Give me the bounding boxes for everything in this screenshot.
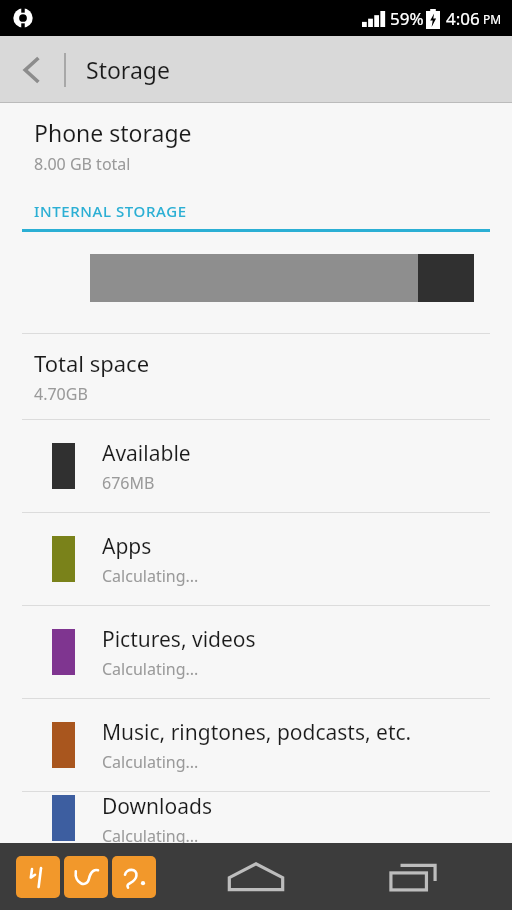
staticText: Storage [86, 54, 170, 85]
staticText: 4.70GB [34, 383, 88, 405]
button[interactable]: Language [112, 856, 156, 898]
button[interactable]: INTERNAL STORAGE [0, 201, 512, 221]
button[interactable]: Available [0, 420, 512, 512]
button[interactable]: Music, ringtones, podcasts, etc. [0, 699, 512, 791]
staticText: 8.00 GB total [34, 153, 131, 175]
button[interactable]: Keyboard layout [64, 856, 108, 898]
staticText: Downloads [102, 792, 212, 821]
staticText: Available [102, 439, 191, 468]
staticText: Music, ringtones, podcasts, etc. [102, 718, 412, 747]
staticText: 676MB [102, 472, 155, 494]
staticText: Calculating... [102, 658, 199, 680]
staticText: 4:06 [446, 7, 480, 30]
staticText: Calculating... [102, 565, 199, 587]
staticText: Apps [102, 532, 152, 561]
button[interactable]: Recent apps [378, 843, 448, 910]
staticText: Pictures, videos [102, 625, 256, 654]
staticText: Phone storage [34, 117, 192, 148]
button[interactable]: Input method [16, 856, 60, 898]
button[interactable]: Back [0, 36, 64, 103]
staticText: Calculating... [102, 825, 199, 843]
staticText: 59% [390, 7, 424, 30]
staticText: Total space [34, 348, 150, 378]
staticText: INTERNAL STORAGE [34, 201, 187, 221]
button[interactable]: Home [217, 843, 295, 910]
button[interactable]: Downloads [0, 792, 512, 843]
staticText: PM [483, 11, 502, 27]
button[interactable]: Apps [0, 513, 512, 605]
staticText: Calculating... [102, 751, 199, 773]
button[interactable]: Pictures, videos [0, 606, 512, 698]
